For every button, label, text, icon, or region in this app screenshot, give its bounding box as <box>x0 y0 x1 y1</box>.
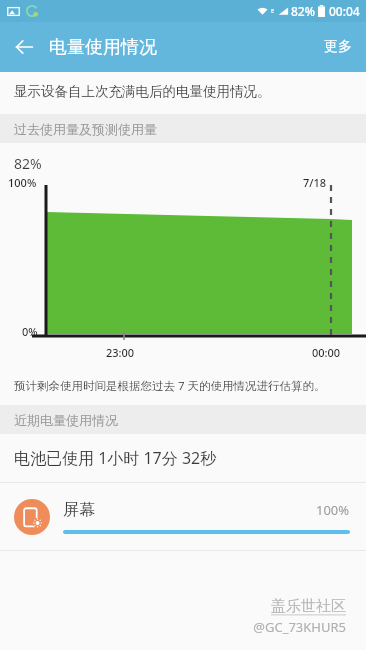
staticText: 100% <box>316 501 350 519</box>
staticText: 盖乐世社区 <box>271 597 346 616</box>
staticText: 过去使用量及预测使用量 <box>14 121 157 137</box>
staticText: 预计剩余使用时间是根据您过去 7 天的使用情况进行估算的。 <box>14 378 326 394</box>
staticText: 显示设备自上次充满电后的电量使用情况。 <box>14 83 271 100</box>
staticText: 00:00 <box>312 345 341 360</box>
staticText: E <box>271 7 275 15</box>
staticText: 82% <box>14 154 42 173</box>
staticText: 100% <box>8 175 37 190</box>
staticText: 82% <box>291 3 315 19</box>
button[interactable]: 屏幕 <box>0 483 366 550</box>
staticText: 7/18 <box>303 175 327 190</box>
button[interactable]: 更多 <box>310 25 366 69</box>
staticText: 电池已使用 1小时 17分 32秒 <box>14 447 217 469</box>
staticText: 0% <box>22 324 38 339</box>
staticText: 电量使用情况 <box>49 36 157 59</box>
staticText: 23:00 <box>106 345 135 360</box>
button[interactable]: Back <box>4 27 44 67</box>
staticText: 00:04 <box>329 3 360 19</box>
staticText: 屏幕 <box>63 500 316 520</box>
staticText: 更多 <box>324 38 352 56</box>
staticText: 近期电量使用情况 <box>14 412 118 428</box>
staticText: @GC_73KHUR5 <box>253 618 346 636</box>
